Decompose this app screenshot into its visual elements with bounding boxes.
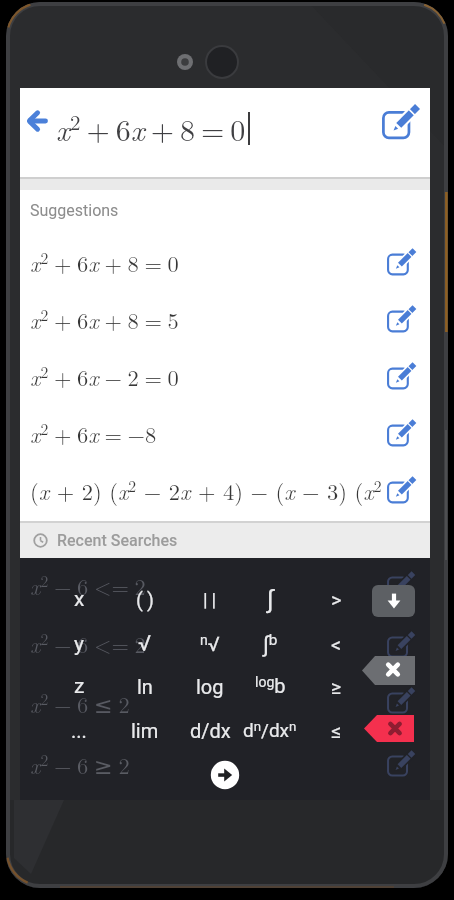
button[interactable]: n√ xyxy=(183,627,237,661)
button[interactable] xyxy=(380,103,418,141)
button[interactable]: ∫ xyxy=(243,582,297,616)
staticText: lim xyxy=(131,719,159,742)
staticText: log xyxy=(196,675,224,698)
button[interactable]: dn/dxn xyxy=(243,713,297,747)
button[interactable]: √ xyxy=(118,627,172,661)
staticText: x2 + 6x + 8 = 0 xyxy=(56,106,246,150)
button[interactable]: ( ) xyxy=(118,582,172,616)
staticText: x2 + 6x = −8 xyxy=(30,417,157,450)
button[interactable]: x xyxy=(52,582,106,616)
staticText: x2 − 6 ≥ 2 xyxy=(30,748,130,781)
button[interactable]: logb xyxy=(243,669,297,703)
button[interactable]: x2 + 6x = −8 xyxy=(20,405,430,462)
staticText: d/dx xyxy=(190,719,231,742)
staticText: x2 − 6 <= 2 xyxy=(30,627,146,660)
button[interactable] xyxy=(211,761,239,789)
button[interactable]: y xyxy=(52,627,106,661)
staticText: > xyxy=(331,588,342,611)
staticText: < xyxy=(331,633,342,656)
button[interactable]: < xyxy=(309,627,363,661)
button[interactable]: | | xyxy=(183,582,237,616)
staticText: ( ) xyxy=(136,588,154,611)
staticText: √ xyxy=(138,631,152,657)
button[interactable]: z xyxy=(52,669,106,703)
staticText: x xyxy=(74,587,85,612)
staticText: Recent Searches xyxy=(57,531,178,550)
button[interactable]: ≥ xyxy=(309,669,363,703)
staticText: n√ xyxy=(200,632,220,656)
staticText: x2 + 6x + 8 = 0 xyxy=(30,246,179,279)
button[interactable]: d/dx xyxy=(183,713,237,747)
button[interactable]: x2 + 6x + 8 = 5 xyxy=(20,291,430,348)
staticText: (x + 2) (x2 − 2x + 4) − (x − 3) (x2 + xyxy=(30,474,382,507)
staticText: y xyxy=(74,632,84,657)
button[interactable] xyxy=(56,92,374,173)
button[interactable]: lim xyxy=(118,713,172,747)
button[interactable]: (x + 2) (x2 − 2x + 4) − (x − 3) (x2 + xyxy=(20,462,430,519)
staticText: x2 + 6x − 2 = 0 xyxy=(30,360,179,393)
staticText: z xyxy=(74,674,85,699)
staticText: x2 + 6x + 8 = 5 xyxy=(30,303,179,336)
staticText: Suggestions xyxy=(30,201,119,220)
staticText: dn/dxn xyxy=(243,719,297,742)
button[interactable]: x2 + 6x + 8 = 0 xyxy=(20,234,430,291)
staticText: ∫ xyxy=(267,585,274,614)
staticText: ln xyxy=(137,675,153,698)
staticText: | | xyxy=(203,588,217,610)
button[interactable]: ... xyxy=(52,713,106,747)
staticText: ≤ xyxy=(331,719,342,742)
button[interactable]: ∫b xyxy=(243,627,297,661)
staticText: ≥ xyxy=(331,675,342,698)
button[interactable]: ln xyxy=(118,669,172,703)
button[interactable]: ≤ xyxy=(309,713,363,747)
staticText: logb xyxy=(255,674,286,698)
button[interactable] xyxy=(362,656,415,685)
button[interactable]: > xyxy=(309,582,363,616)
staticText: ∫b xyxy=(263,631,278,658)
button[interactable]: x2 + 6x − 2 = 0 xyxy=(20,348,430,405)
button[interactable] xyxy=(22,106,52,136)
staticText: ... xyxy=(71,719,87,742)
button[interactable] xyxy=(364,715,414,742)
staticText: x2 − 6 <= 2 xyxy=(30,569,146,602)
button[interactable]: log xyxy=(183,669,237,703)
button[interactable] xyxy=(372,585,415,617)
staticText: x2 − 6 ≤ 2 xyxy=(30,687,130,720)
